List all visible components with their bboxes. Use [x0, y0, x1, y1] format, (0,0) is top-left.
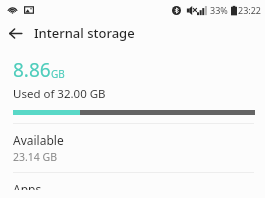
staticText: GB	[51, 67, 65, 81]
staticText: 23.14 GB	[13, 150, 58, 164]
staticText: Apps	[13, 181, 42, 190]
button[interactable]: Back	[0, 19, 30, 47]
staticText: Available	[13, 132, 64, 148]
staticText: 23:22	[238, 4, 262, 16]
staticText: 33%	[210, 4, 228, 16]
staticText: Used of 32.00 GB	[13, 86, 106, 102]
staticText: 8.86	[13, 57, 51, 83]
staticText: Internal storage	[34, 24, 135, 42]
button[interactable]: Available	[0, 124, 265, 172]
button[interactable]: Apps	[0, 173, 265, 198]
